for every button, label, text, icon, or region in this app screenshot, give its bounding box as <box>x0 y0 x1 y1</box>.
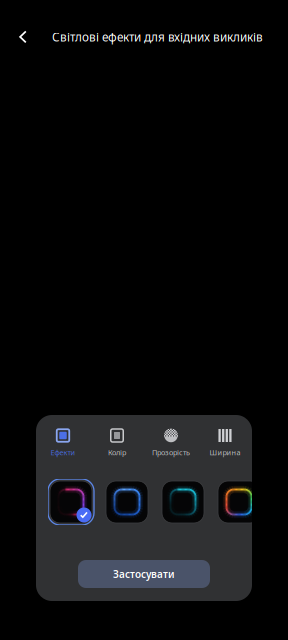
button[interactable]: Ефекти <box>36 428 90 458</box>
staticText: Прозорість <box>152 447 190 457</box>
button[interactable] <box>48 479 94 525</box>
button[interactable]: Колір <box>90 428 144 458</box>
staticText: Світлові ефекти для вхідних викликів <box>52 29 263 45</box>
button[interactable]: Прозорість <box>144 428 198 458</box>
button[interactable] <box>160 479 206 525</box>
staticText: Колір <box>108 447 126 457</box>
staticText: Ширина <box>209 447 240 457</box>
button[interactable]: Ширина <box>198 428 252 458</box>
button[interactable] <box>216 479 262 525</box>
button[interactable] <box>104 479 150 525</box>
button[interactable]: Застосувати <box>78 560 210 588</box>
staticText: Застосувати <box>113 567 175 581</box>
button[interactable]: Back <box>8 22 38 52</box>
staticText: Ефекти <box>50 447 75 457</box>
